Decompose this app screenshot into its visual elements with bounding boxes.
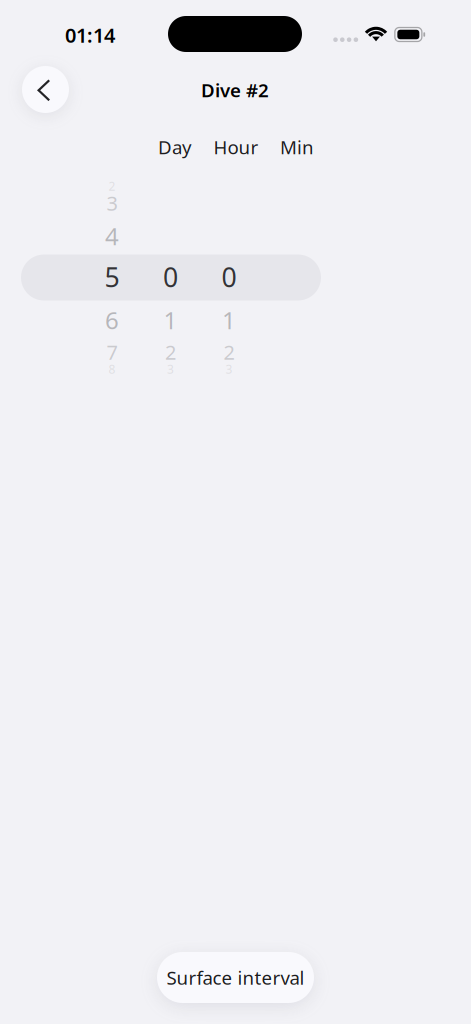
staticText: 4: [105, 220, 119, 252]
staticText: 0: [221, 259, 236, 295]
staticText: Surface interval: [166, 965, 304, 990]
staticText: 1: [163, 304, 177, 336]
staticText: 2: [223, 339, 234, 365]
staticText: 8: [108, 361, 115, 377]
button[interactable]: Back: [22, 66, 69, 113]
button[interactable]: Minutes: [0, 0, 471, 1024]
staticText: 5: [104, 259, 119, 295]
staticText: 0: [163, 259, 178, 295]
button[interactable]: Days: [0, 0, 471, 1024]
staticText: 7: [106, 339, 117, 365]
staticText: 2: [108, 178, 115, 194]
staticText: Min: [280, 135, 314, 159]
button[interactable]: Surface interval: [157, 952, 314, 1003]
staticText: 3: [106, 190, 117, 216]
staticText: Hour: [213, 135, 258, 159]
button[interactable]: Hours: [0, 0, 471, 1024]
staticText: Dive #2: [201, 78, 269, 102]
staticText: 01:14: [65, 22, 115, 48]
staticText: 2: [165, 339, 176, 365]
staticText: Day: [158, 135, 192, 159]
staticText: 3: [225, 361, 232, 377]
staticText: 3: [167, 361, 174, 377]
staticText: 6: [105, 304, 119, 336]
staticText: 1: [222, 304, 236, 336]
